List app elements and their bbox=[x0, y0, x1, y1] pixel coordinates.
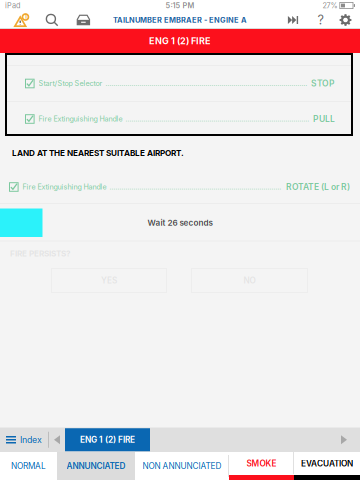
staticText: Wait 26 seconds bbox=[147, 218, 212, 228]
button[interactable]: NORMAL bbox=[0, 452, 57, 480]
staticText: TAILNUMBER EMBRAER - ENGINE A bbox=[113, 15, 247, 24]
button[interactable]: Help bbox=[307, 11, 334, 29]
staticText: ? bbox=[317, 12, 323, 28]
staticText: Index bbox=[20, 434, 42, 445]
staticText: NO bbox=[243, 275, 255, 285]
staticText: ........................................… bbox=[126, 115, 310, 123]
button[interactable]: Skip to end bbox=[279, 11, 307, 29]
button[interactable]: Archive bbox=[67, 11, 100, 29]
button[interactable]: Index bbox=[0, 427, 48, 452]
button[interactable]: Settings bbox=[334, 11, 357, 29]
staticText: LAND AT THE NEAREST SUITABLE AIRPORT. bbox=[12, 148, 184, 158]
staticText: NORMAL bbox=[11, 461, 46, 471]
staticText: NON ANNUNCIATED bbox=[142, 461, 221, 471]
staticText: ENG 1 (2) FIRE bbox=[149, 35, 211, 46]
staticText: YES bbox=[101, 275, 117, 285]
staticText: Fire Extinguishing Handle bbox=[39, 115, 123, 123]
button[interactable]: ANNUNCIATED bbox=[57, 452, 135, 480]
staticText: Start/Stop Selector bbox=[39, 79, 103, 88]
staticText: 1 bbox=[24, 13, 26, 20]
staticText: ANNUNCIATED bbox=[66, 461, 125, 471]
staticText: Fire Extinguishing Handle bbox=[23, 183, 107, 191]
staticText: iPad bbox=[5, 1, 20, 10]
button[interactable]: Search bbox=[37, 11, 67, 29]
staticText: STOP bbox=[311, 78, 335, 89]
button[interactable]: Previous checklist bbox=[49, 427, 65, 452]
button[interactable]: Alerts bbox=[7, 11, 37, 29]
staticText: ROTATE (L or R) bbox=[286, 182, 350, 192]
button[interactable]: EVACUATION bbox=[294, 452, 360, 480]
staticText: FIRE PERSISTS? bbox=[10, 249, 71, 258]
staticText: PULL bbox=[313, 114, 335, 124]
button[interactable]: Next checklist bbox=[334, 427, 354, 452]
button[interactable]: ENG 1 (2) FIRE bbox=[65, 428, 150, 451]
staticText: ........................................… bbox=[110, 183, 283, 191]
button[interactable]: NON ANNUNCIATED bbox=[135, 452, 229, 480]
staticText: 5:15 PM bbox=[165, 1, 194, 10]
staticText: SMOKE bbox=[246, 458, 276, 468]
button[interactable]: SMOKE bbox=[229, 452, 294, 480]
staticText: ENG 1 (2) FIRE bbox=[80, 435, 135, 445]
staticText: ........................................… bbox=[106, 79, 308, 88]
staticText: 27% bbox=[322, 1, 337, 10]
staticText: EVACUATION bbox=[301, 458, 353, 468]
